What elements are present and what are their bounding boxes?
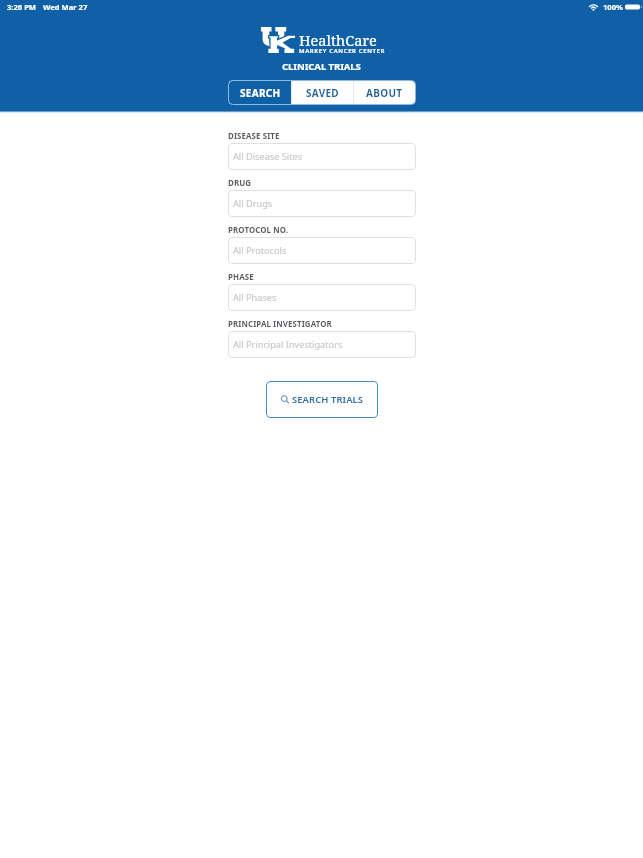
staticText: All Principal Investigators	[233, 338, 343, 351]
staticText: CLINICAL TRIALS	[282, 60, 361, 73]
staticText: Wed Mar 27	[43, 2, 88, 12]
staticText: All Phases	[233, 291, 277, 304]
staticText: PROTOCOL NO.	[228, 225, 289, 236]
staticText: PRINCIPAL INVESTIGATOR	[228, 319, 332, 330]
button[interactable]: All Phases	[228, 284, 416, 311]
button[interactable]: SEARCH	[229, 81, 291, 104]
other: University of Kentucky logo	[261, 27, 295, 53]
other: Wi-Fi connected	[588, 3, 599, 11]
staticText: SEARCH TRIALS	[292, 393, 364, 406]
button[interactable]: SEARCH TRIALS	[266, 381, 378, 418]
button[interactable]: SAVED	[292, 81, 353, 104]
staticText: 3:26 PM	[7, 2, 37, 12]
button[interactable]: ABOUT	[354, 81, 415, 104]
button[interactable]: All Principal Investigators	[228, 331, 416, 358]
staticText: SEARCH	[240, 86, 281, 100]
button[interactable]: All Drugs	[228, 190, 416, 217]
staticText: All Drugs	[233, 197, 273, 210]
other: Battery full	[625, 3, 642, 11]
staticText: DISEASE SITE	[228, 131, 280, 142]
button[interactable]: All Protocols	[228, 237, 416, 264]
staticText: MARKEY CANCER CENTER	[299, 47, 386, 55]
staticText: HealthCare	[299, 30, 377, 50]
staticText: ABOUT	[366, 86, 403, 100]
staticText: DRUG	[228, 178, 252, 189]
staticText: All Disease Sites	[233, 150, 303, 163]
staticText: All Protocols	[233, 244, 287, 257]
staticText: 100%	[603, 2, 623, 12]
staticText: SAVED	[306, 86, 339, 100]
staticText: PHASE	[228, 272, 254, 283]
button[interactable]: All Disease Sites	[228, 143, 416, 170]
